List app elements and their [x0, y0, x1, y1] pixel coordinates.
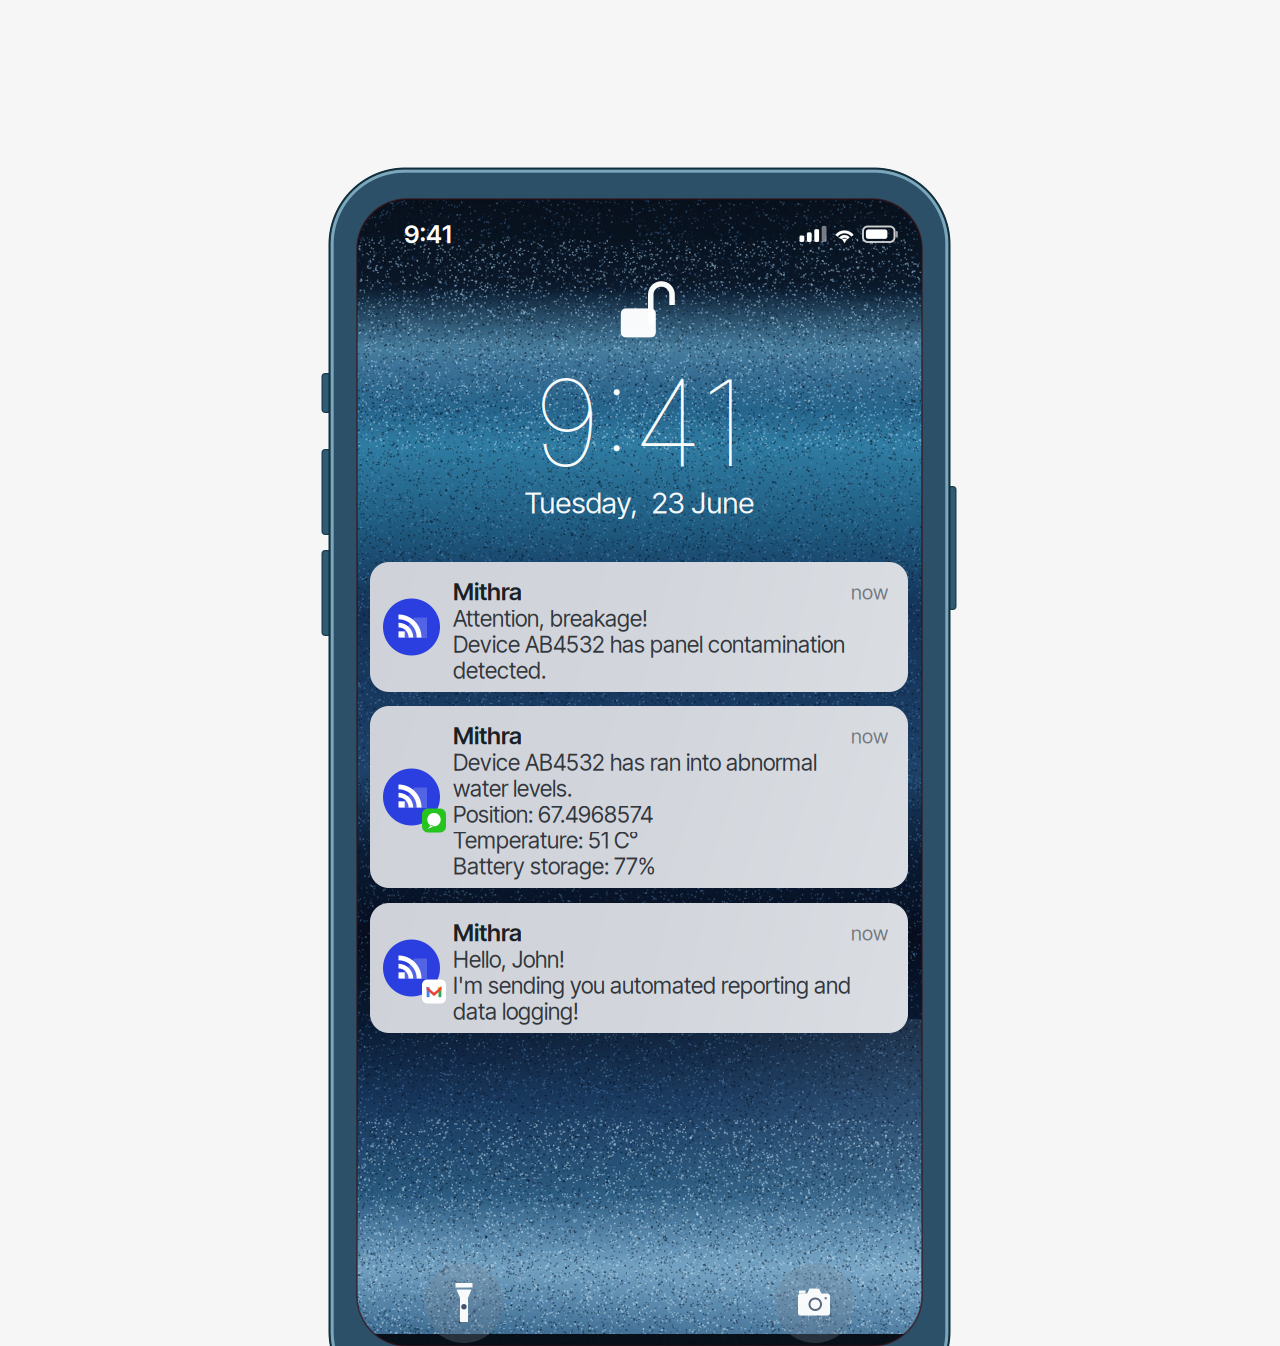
staticText: detected.	[453, 657, 546, 684]
staticText: Device AB4532 has ran into abnormal	[453, 749, 817, 776]
staticText: Mithra	[453, 918, 522, 947]
button[interactable]: now	[370, 706, 908, 888]
button[interactable]: now	[370, 562, 908, 692]
staticText: Tuesday, 23 June	[524, 485, 754, 520]
staticText: Temperature: 51 C°	[453, 827, 638, 854]
staticText: I'm sending you automated reporting and	[453, 972, 851, 999]
staticText: water levels.	[453, 775, 572, 802]
button[interactable]: Camera	[775, 1263, 855, 1343]
staticText: Device AB4532 has panel contamination	[453, 631, 845, 658]
staticText: Mithra	[453, 577, 522, 606]
staticText: Attention, breakage!	[453, 605, 648, 632]
button[interactable]: Flashlight	[424, 1263, 504, 1343]
staticText: Battery storage: 77%	[453, 852, 655, 880]
button[interactable]: now	[370, 903, 908, 1033]
staticText: Position: 67.4968574	[453, 801, 653, 828]
staticText: now	[851, 724, 888, 748]
staticText: 9:41	[533, 351, 745, 495]
staticText: Mithra	[453, 721, 522, 750]
staticText: 9:41	[404, 219, 452, 249]
staticText: data logging!	[453, 998, 579, 1025]
staticText: now	[851, 580, 888, 604]
staticText: Hello, John!	[453, 946, 565, 973]
staticText: now	[851, 921, 888, 945]
